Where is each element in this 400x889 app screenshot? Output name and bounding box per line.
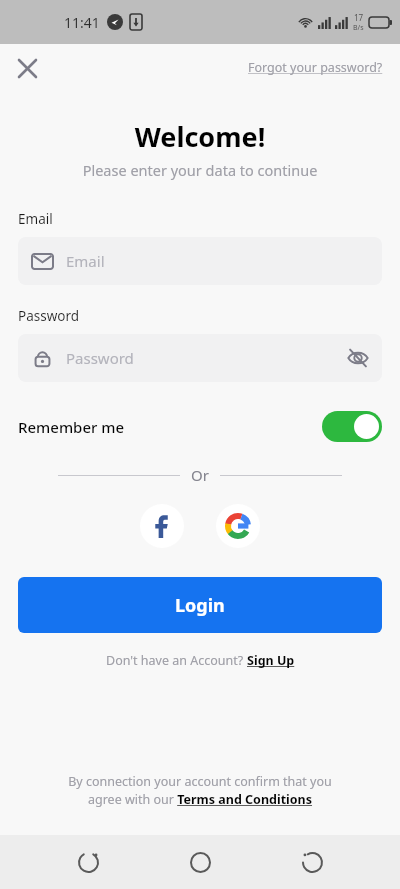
- staticText: Email: [18, 210, 53, 228]
- staticText: Login: [175, 593, 225, 618]
- button[interactable]: Login: [18, 577, 382, 633]
- staticText: Please enter your data to continue: [0, 160, 400, 180]
- button[interactable]: Remember me toggle: [322, 411, 382, 442]
- staticText: B/s: [353, 23, 364, 33]
- staticText: Or: [191, 465, 209, 485]
- button[interactable]: Home: [176, 838, 224, 886]
- staticText: Password: [66, 348, 134, 368]
- button[interactable]: Password: [18, 334, 382, 382]
- button[interactable]: Forgot your password?: [248, 59, 383, 76]
- staticText: Password: [18, 307, 80, 325]
- staticText: Forgot your password?: [248, 59, 383, 76]
- button[interactable]: Show password: [338, 338, 378, 378]
- button[interactable]: Recents: [64, 838, 112, 886]
- button[interactable]: Sign in with Facebook: [140, 504, 184, 548]
- staticText: Don't have an Account?: [106, 652, 247, 669]
- button[interactable]: Email: [18, 237, 382, 285]
- button[interactable]: Back: [288, 838, 336, 886]
- button[interactable]: Sign in with Google: [216, 504, 260, 548]
- staticText: 17: [354, 12, 364, 23]
- staticText: Sign Up: [247, 652, 295, 669]
- staticText: Welcome!: [0, 118, 400, 155]
- button[interactable]: Don't have an Account?: [106, 652, 295, 669]
- button[interactable]: Close: [10, 51, 44, 85]
- button[interactable]: By connection your account confirm that …: [60, 773, 340, 808]
- staticText: Email: [66, 251, 105, 271]
- staticText: 11:41: [64, 13, 100, 32]
- staticText: Remember me: [18, 417, 125, 437]
